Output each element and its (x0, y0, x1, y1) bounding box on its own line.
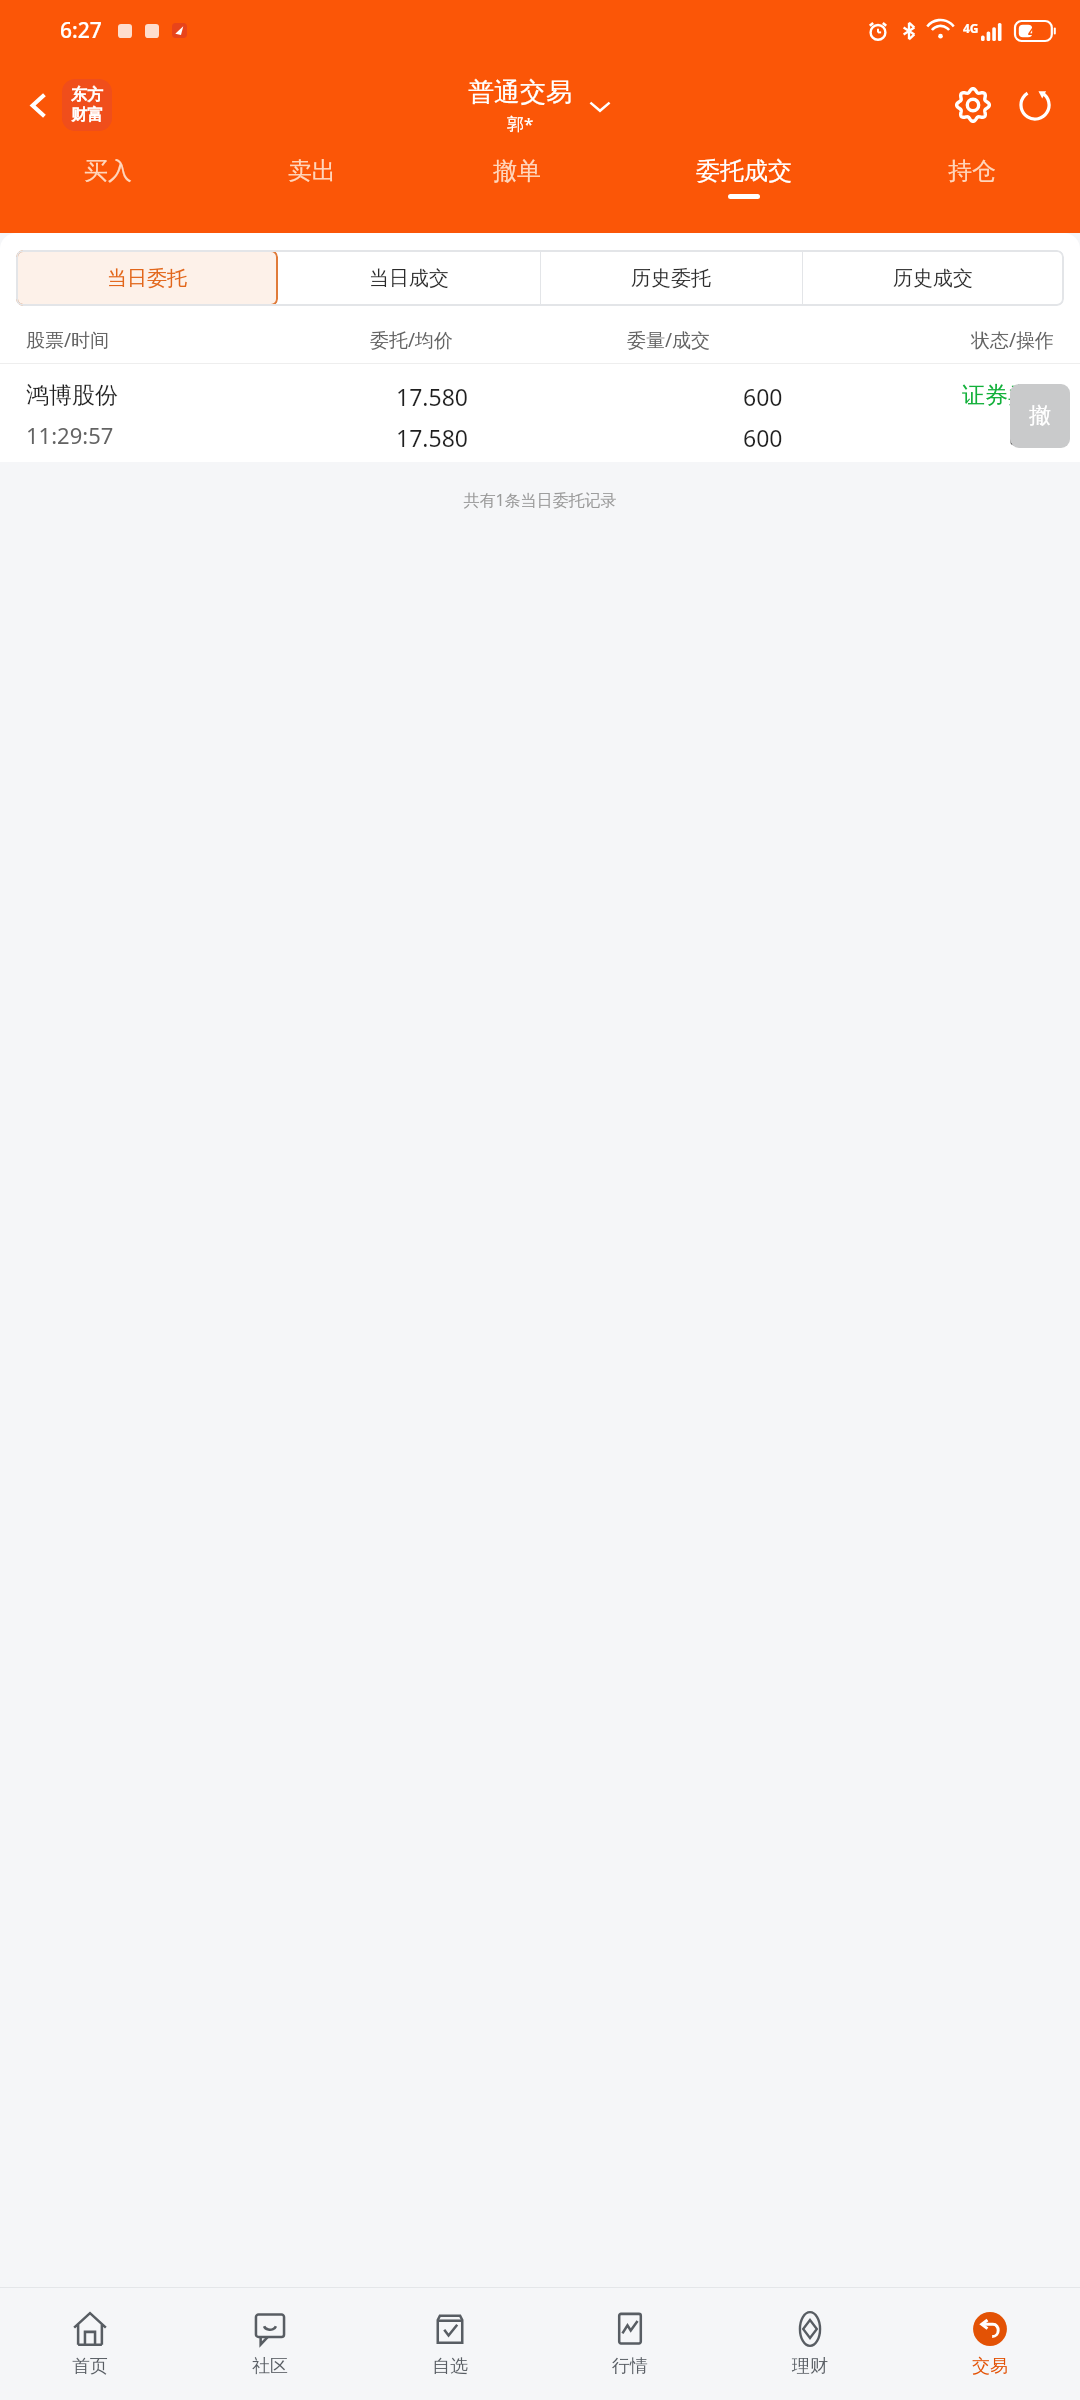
staticText: 股票/时间 (26, 327, 283, 353)
staticText: 撤 (1029, 402, 1051, 430)
staticText: 社区 (252, 2355, 288, 2378)
button[interactable]: 撤单 (414, 150, 619, 233)
button[interactable]: 社区 (180, 2288, 360, 2400)
staticText: 证券卖出 (962, 381, 1054, 410)
staticText: 委托/均价 (283, 327, 540, 353)
staticText: 财富 (71, 105, 103, 125)
staticText: 共有1条当日委托记录 (0, 489, 1080, 511)
staticText: 普通交易 (468, 76, 572, 109)
button[interactable]: 买入 (6, 150, 210, 233)
button[interactable]: 委托成交 (619, 150, 869, 233)
staticText: 6:27 (60, 16, 102, 45)
staticText: 撤单 (493, 156, 541, 186)
staticText: 4G (963, 20, 979, 36)
button[interactable]: 持仓 (869, 150, 1074, 233)
button[interactable]: 当日成交 (278, 250, 540, 306)
staticText: 委量/成交 (540, 327, 797, 353)
staticText: 理财 (792, 2355, 828, 2378)
staticText: 17.580 (396, 422, 468, 453)
staticText: 郭* (507, 112, 534, 135)
staticText: 当日委托 (107, 266, 187, 291)
button[interactable]: 鸿博股份 (0, 369, 1080, 462)
staticText: 状态/操作 (797, 327, 1054, 353)
button[interactable]: 当日委托 (16, 250, 278, 306)
button[interactable]: 行情 (540, 2288, 720, 2400)
staticText: 当日成交 (369, 266, 449, 291)
staticText: 17.580 (396, 381, 468, 412)
staticText: 东方 (71, 85, 103, 105)
staticText: 11:29:57 (26, 420, 114, 450)
staticText: 持仓 (948, 156, 996, 186)
button[interactable]: 首页 (0, 2288, 180, 2400)
staticText: 600 (743, 422, 783, 453)
staticText: 首页 (72, 2355, 108, 2378)
staticText: 行情 (612, 2355, 648, 2378)
button[interactable]: 东方财富 (62, 79, 112, 131)
staticText: 鸿博股份 (26, 381, 118, 410)
button[interactable]: 理财 (720, 2288, 900, 2400)
staticText: 600 (743, 381, 783, 412)
button[interactable]: 卖出 (210, 150, 414, 233)
button[interactable]: 撤 (1010, 384, 1070, 448)
staticText: 历史成交 (893, 266, 973, 291)
button[interactable]: 历史成交 (802, 250, 1064, 306)
staticText: 历史委托 (631, 266, 711, 291)
button[interactable]: 刷新 (1004, 74, 1066, 136)
button[interactable]: 交易 (900, 2288, 1080, 2400)
staticText: 已成 (1008, 420, 1054, 449)
staticText: 买入 (84, 156, 132, 186)
staticText: 卖出 (288, 156, 336, 186)
staticText: 自选 (432, 2355, 468, 2378)
staticText: 46 (1028, 22, 1045, 41)
staticText: 交易 (972, 2355, 1008, 2378)
button[interactable]: 返回 (8, 75, 68, 135)
button[interactable]: 设置 (942, 74, 1004, 136)
button[interactable]: 普通交易 (468, 76, 612, 135)
button[interactable]: 历史委托 (540, 250, 802, 306)
button[interactable]: 自选 (360, 2288, 540, 2400)
staticText: 委托成交 (696, 156, 792, 186)
